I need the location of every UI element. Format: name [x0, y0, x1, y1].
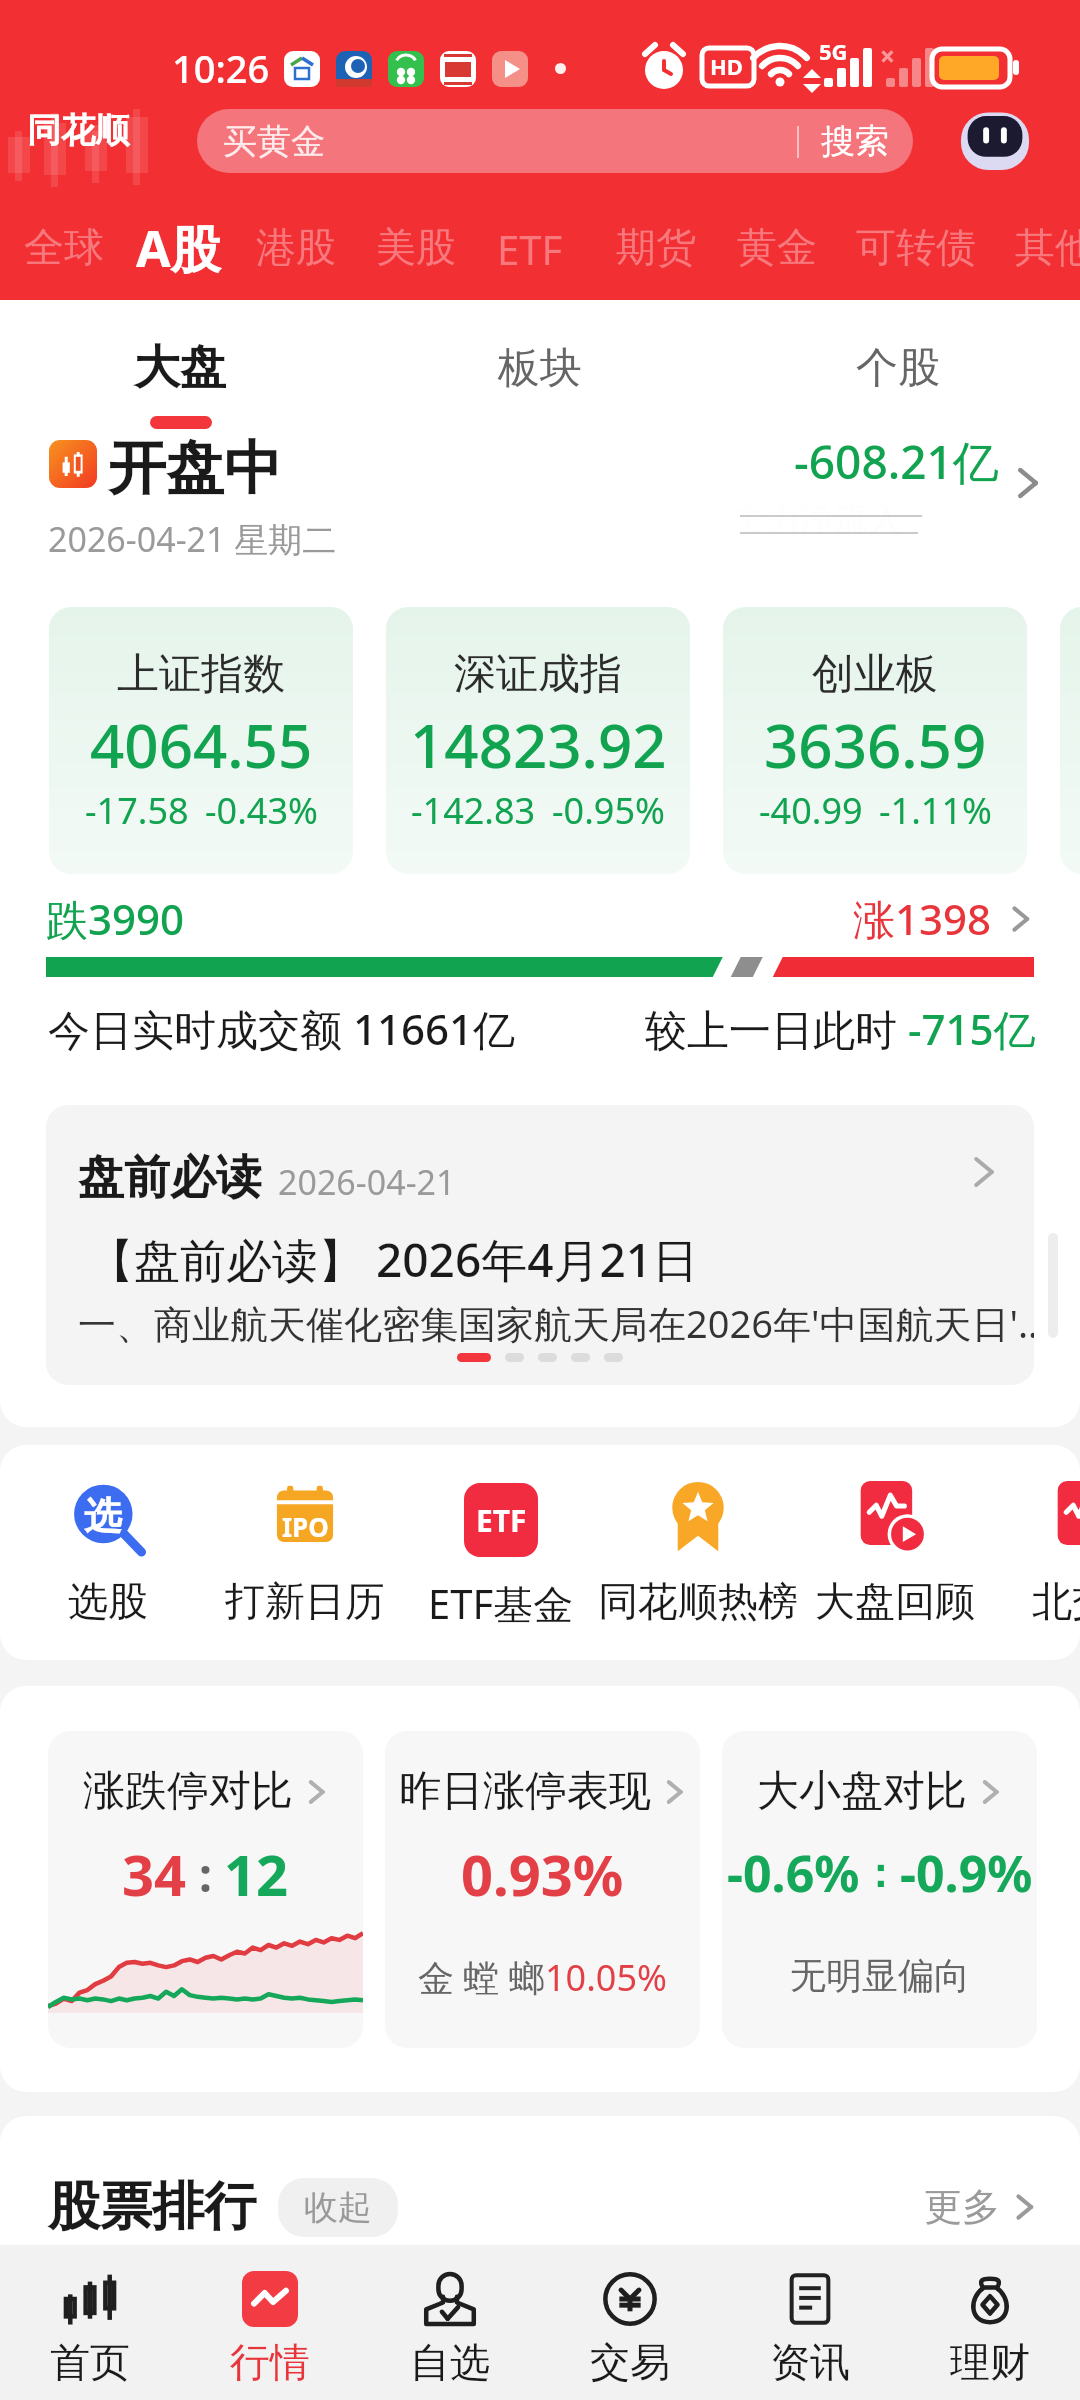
staticText: 交易 — [590, 2337, 670, 2387]
staticText: -0.9% — [900, 1839, 1033, 1907]
staticText: 港股 — [256, 222, 336, 272]
button[interactable]: IPO — [195, 1478, 415, 1658]
staticText: 金 螳 螂 — [418, 1953, 545, 2002]
button[interactable]: 其他 — [1015, 222, 1080, 272]
staticText: 0.93% — [461, 1836, 624, 1912]
staticText: 无明显偏向 — [790, 1953, 970, 1998]
staticText: 可转债 — [856, 222, 976, 272]
staticText: -17.58 — [85, 786, 189, 835]
staticText: 2026-04-21 星期二 — [48, 516, 337, 562]
button[interactable]: 板块 — [450, 336, 630, 400]
button[interactable]: 主力净流入 详情 — [726, 420, 1042, 550]
staticText: 大盘回顾 — [815, 1576, 975, 1626]
staticText: -608.21亿 — [794, 430, 999, 493]
staticText: -715亿 — [908, 1000, 1036, 1057]
staticText: 黄金 — [737, 222, 817, 272]
staticText: : — [187, 1843, 224, 1906]
staticText: 收起 — [304, 2186, 372, 2229]
staticText: -142.83 — [411, 786, 536, 835]
staticText: 行情 — [230, 2337, 310, 2387]
staticText: 盘前必读 — [78, 1149, 262, 1207]
button[interactable]: ETF — [497, 222, 563, 276]
staticText: 深证成指 — [454, 648, 622, 701]
button[interactable]: 跌3990 — [46, 890, 1034, 947]
staticText: IPO — [282, 1509, 329, 1544]
button[interactable]: 创业板 — [723, 607, 1027, 874]
button[interactable]: 北交所 — [982, 1478, 1080, 1658]
staticText: 一、商业航天催化密集国家航天局在2026年'中国航天日'… — [78, 1297, 1034, 1349]
button[interactable]: 同花顺热榜 — [588, 1478, 808, 1658]
button[interactable]: 资讯 — [720, 2245, 900, 2400]
button[interactable] — [1060, 607, 1080, 874]
button[interactable]: 首页 — [0, 2245, 180, 2400]
staticText: ： — [860, 1848, 900, 1898]
staticText: 同花顺 — [27, 109, 129, 152]
staticText: 上证指数 — [117, 648, 285, 701]
button[interactable]: 盘前必读 — [46, 1105, 1034, 1385]
button[interactable]: 自选 — [360, 2245, 540, 2400]
staticText: 大小盘对比 — [757, 1765, 967, 1818]
staticText: -0.95% — [552, 786, 665, 835]
button[interactable]: 黄金 — [737, 222, 817, 272]
staticText: 资讯 — [770, 2337, 850, 2387]
staticText: 选股 — [68, 1576, 148, 1626]
button[interactable]: 行情 — [180, 2245, 360, 2400]
staticText: -40.99 — [759, 786, 863, 835]
button[interactable]: 理财 — [900, 2245, 1080, 2400]
staticText: 今日实时成交额 — [48, 1000, 353, 1057]
staticText: 首页 — [50, 2337, 130, 2387]
button[interactable]: AI assistant — [958, 105, 1032, 179]
button[interactable]: 大盘回顾 — [785, 1478, 1005, 1658]
staticText: 买黄金 — [223, 120, 325, 163]
staticText: -1.11% — [879, 786, 992, 835]
button[interactable]: 个股 — [808, 336, 988, 400]
staticText: A股 — [136, 214, 221, 282]
staticText: 期货 — [616, 222, 696, 272]
staticText: 理财 — [950, 2337, 1030, 2387]
staticText: 跌3990 — [46, 890, 185, 947]
button[interactable]: 可转债 — [856, 222, 976, 272]
staticText: 涨跌停对比 — [83, 1765, 293, 1818]
staticText: 34 — [122, 1836, 187, 1912]
staticText: HD — [710, 51, 743, 81]
button[interactable]: 大盘 — [90, 336, 270, 400]
staticText: 全球 — [24, 222, 104, 272]
button[interactable]: 交易 — [540, 2245, 720, 2400]
staticText: 股票排行 — [48, 2174, 256, 2240]
staticText: ETF基金 — [428, 1576, 574, 1631]
button[interactable]: ETF — [391, 1478, 611, 1658]
button[interactable]: 全球 — [24, 222, 104, 272]
button[interactable]: 上证指数 — [49, 607, 353, 874]
staticText: ETF — [497, 222, 563, 276]
staticText: 较上一日此时 — [645, 1000, 908, 1057]
button[interactable]: 美股 — [376, 222, 456, 272]
staticText: -0.6% — [727, 1839, 860, 1907]
button[interactable]: 期货 — [616, 222, 696, 272]
staticText: 美股 — [376, 222, 456, 272]
staticText: 12 — [224, 1836, 289, 1912]
button[interactable]: 港股 — [256, 222, 336, 272]
button[interactable]: A股 — [136, 214, 221, 282]
button[interactable]: 昨日涨停表现 — [385, 1731, 700, 2048]
button[interactable]: 大小盘对比 — [722, 1731, 1037, 2048]
staticText: 2026-04-21 — [278, 1159, 456, 1205]
staticText: -0.43% — [205, 786, 318, 835]
staticText: 10:26 — [172, 42, 270, 94]
staticText: 11661亿 — [353, 1000, 516, 1057]
button[interactable]: 深证成指 — [386, 607, 690, 874]
staticText: 【盘前必读】 2026年4月21日 — [88, 1228, 699, 1291]
staticText: 同花顺热榜 — [598, 1576, 798, 1626]
staticText: 5G — [819, 36, 848, 66]
staticText: 主力净流入 — [732, 498, 902, 541]
staticText: 其他 — [1015, 222, 1080, 272]
button[interactable]: 涨跌停对比 — [48, 1731, 363, 2048]
staticText: 打新日历 — [225, 1576, 385, 1626]
staticText: 更多 — [924, 2183, 1000, 2231]
staticText: 北交所 — [1032, 1576, 1080, 1626]
staticText: 个股 — [856, 342, 940, 395]
button[interactable]: 买黄金 — [197, 109, 913, 173]
button[interactable]: 收起 — [278, 2178, 398, 2237]
staticText: 板块 — [498, 342, 582, 395]
staticText: 自选 — [410, 2337, 490, 2387]
button[interactable]: 选 — [0, 1478, 218, 1658]
